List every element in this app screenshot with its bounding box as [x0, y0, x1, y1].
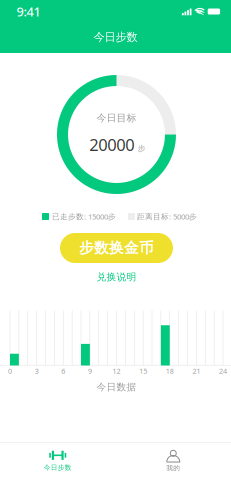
- staticText: 9:41: [16, 3, 40, 20]
- button[interactable]: 我的: [115, 444, 231, 478]
- staticText: 步数换金币: [79, 239, 154, 257]
- staticText: 今日步数: [44, 463, 72, 472]
- staticText: 15: [139, 366, 147, 376]
- staticText: 距离目标: 5000步: [137, 211, 197, 222]
- staticText: 今日数据: [96, 381, 136, 393]
- staticText: 18: [166, 366, 174, 376]
- staticText: 兑换说明: [96, 271, 136, 283]
- button[interactable]: 今日步数: [87, 26, 143, 48]
- staticText: 步: [138, 143, 146, 153]
- staticText: 3: [35, 366, 39, 376]
- button[interactable]: 兑换说明: [88, 268, 144, 286]
- button[interactable]: 今日步数: [0, 444, 115, 478]
- staticText: 今日目标: [96, 112, 136, 124]
- staticText: 12: [112, 366, 120, 376]
- staticText: 21: [192, 366, 200, 376]
- button[interactable]: 步数换金币: [60, 233, 173, 263]
- staticText: 6: [61, 366, 65, 376]
- staticText: 9: [88, 366, 92, 376]
- staticText: 今日步数: [93, 30, 137, 44]
- staticText: 已走步数: 15000步: [52, 211, 116, 222]
- staticText: 我的: [166, 464, 180, 472]
- staticText: 20000: [89, 133, 134, 156]
- staticText: 24: [219, 366, 227, 376]
- staticText: 0: [8, 366, 12, 376]
